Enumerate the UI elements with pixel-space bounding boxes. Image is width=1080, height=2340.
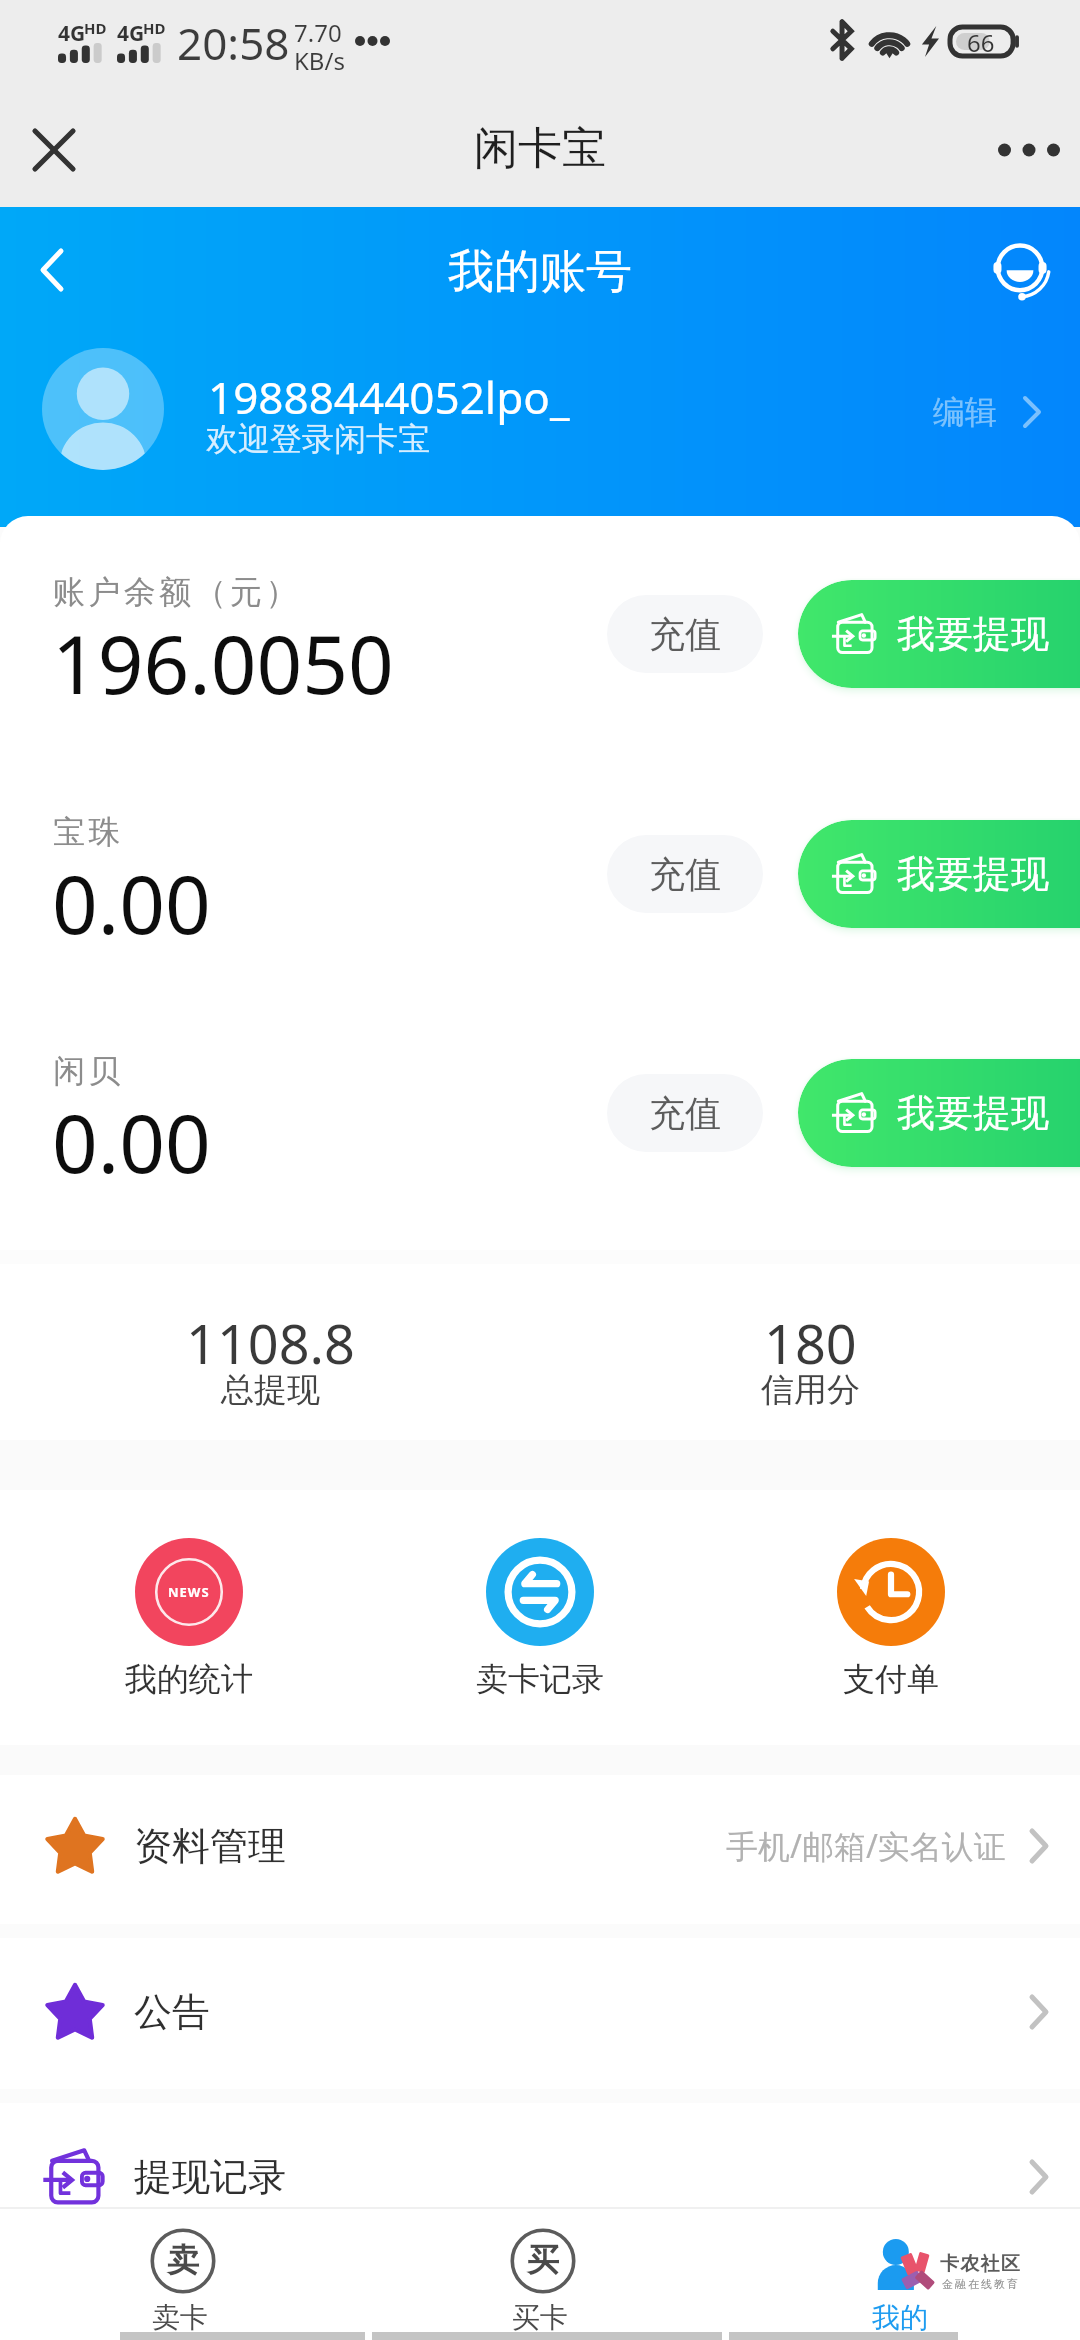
staticText: 19888444052lpo_ (208, 367, 570, 427)
button[interactable]: 买 (360, 2229, 720, 2335)
button[interactable]: 编辑 (933, 392, 1041, 432)
staticText: 0.00 (52, 1087, 211, 1196)
staticText: 手机/邮箱/实名认证 (726, 1824, 1006, 1868)
staticText: 我的统计 (125, 1659, 253, 1699)
button[interactable]: 充值 (607, 835, 763, 913)
staticText: 欢迎登录闲卡宝 (206, 419, 430, 459)
button[interactable]: 卖卡记录 (364, 1538, 715, 1699)
staticText: 编辑 (933, 392, 997, 432)
button[interactable]: 支付单 (715, 1538, 1066, 1699)
button[interactable]: 我要提现 (798, 1059, 1080, 1167)
staticText: 7.70 (294, 16, 342, 49)
staticText: 信用分 (761, 1369, 860, 1411)
staticText: 180 (764, 1306, 857, 1380)
staticText: 20:58 (177, 13, 290, 73)
staticText: 公告 (134, 1988, 210, 2036)
staticText: 卡农社区 (940, 2252, 1022, 2276)
button[interactable]: 充值 (607, 595, 763, 673)
staticText: 资料管理 (134, 1822, 286, 1870)
staticText: 充值 (649, 852, 721, 897)
staticText: 闲贝 (53, 1051, 124, 1091)
button[interactable]: 卖 (0, 2229, 360, 2335)
staticText: 支付单 (843, 1659, 939, 1699)
staticText: 1108.8 (186, 1306, 355, 1380)
staticText: 闲卡宝 (474, 121, 606, 176)
button[interactable]: 充值 (607, 1074, 763, 1152)
button[interactable]: 180 (540, 1306, 1080, 1422)
staticText: 4G (58, 19, 86, 48)
staticText: 4G (117, 19, 145, 48)
staticText: HD (84, 18, 107, 38)
button[interactable]: NEWS (14, 1538, 364, 1699)
button[interactable]: Close (19, 115, 89, 185)
staticText: NEWS (168, 1583, 210, 1601)
staticText: 我要提现 (897, 1089, 1049, 1137)
staticText: KB/s (294, 44, 345, 77)
staticText: 我的 (872, 2300, 928, 2335)
staticText: 我要提现 (897, 610, 1049, 658)
staticText: 卖卡 (152, 2300, 208, 2335)
staticText: 卖卡记录 (476, 1659, 604, 1699)
button[interactable]: 资料管理 (0, 1774, 1080, 1918)
button[interactable]: 我要提现 (798, 820, 1080, 928)
staticText: 66 (967, 26, 995, 57)
staticText: 196.0050 (52, 608, 394, 717)
button[interactable]: More options (994, 115, 1064, 185)
staticText: 卖 (167, 2240, 199, 2280)
staticText: 宝珠 (53, 812, 124, 852)
button[interactable]: Customer service (984, 234, 1056, 306)
button[interactable]: 我的 (720, 2229, 1080, 2335)
staticText: 账户余额（元） (53, 572, 301, 612)
staticText: 总提现 (221, 1369, 320, 1411)
staticText: 充值 (649, 612, 721, 657)
button[interactable]: 提现记录 (0, 2105, 1080, 2207)
staticText: 我的账号 (448, 243, 632, 301)
button[interactable]: 公告 (0, 1940, 1080, 2084)
staticText: HD (143, 18, 166, 38)
staticText: 充值 (649, 1091, 721, 1136)
button[interactable]: Back (17, 235, 87, 305)
button[interactable]: 1108.8 (0, 1306, 540, 1422)
staticText: 0.00 (52, 848, 211, 957)
staticText: 提现记录 (134, 2153, 286, 2201)
button[interactable]: 我要提现 (798, 580, 1080, 688)
staticText: 我要提现 (897, 850, 1049, 898)
staticText: 买 (527, 2240, 559, 2280)
staticText: 金融在线教育 (941, 2277, 1019, 2291)
staticText: 买卡 (512, 2300, 568, 2335)
